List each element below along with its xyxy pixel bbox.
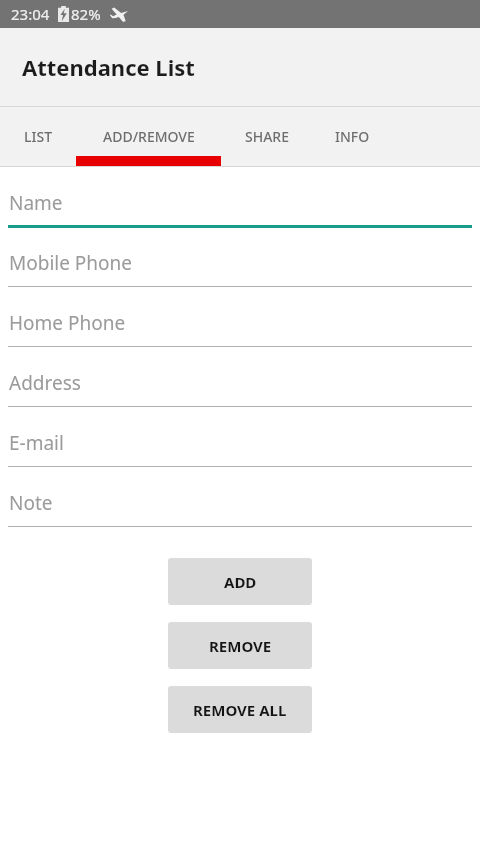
other: Battery charging: [58, 6, 69, 22]
staticText: ADD: [224, 572, 257, 592]
button[interactable]: Note: [0, 480, 480, 540]
staticText: Attendance List: [22, 52, 195, 82]
staticText: REMOVE: [209, 636, 272, 656]
staticText: Mobile Phone: [9, 250, 133, 276]
button[interactable]: ADD: [168, 558, 312, 605]
staticText: 23:04: [11, 4, 50, 24]
staticText: INFO: [335, 127, 370, 146]
staticText: Note: [9, 490, 53, 516]
button[interactable]: REMOVE: [168, 622, 312, 669]
button[interactable]: Address: [0, 360, 480, 420]
button[interactable]: E-mail: [0, 420, 480, 480]
button[interactable]: ADD/REMOVE: [76, 107, 221, 166]
button[interactable]: SHARE: [221, 107, 313, 166]
staticText: LIST: [24, 127, 52, 146]
staticText: Address: [9, 370, 81, 396]
button[interactable]: INFO: [313, 107, 391, 166]
staticText: Home Phone: [9, 310, 126, 336]
staticText: E-mail: [9, 430, 64, 456]
button[interactable]: Mobile Phone: [0, 240, 480, 300]
staticText: ADD/REMOVE: [103, 127, 195, 146]
staticText: REMOVE ALL: [193, 700, 287, 720]
staticText: 82%: [71, 4, 101, 24]
other: Airplane mode: [110, 7, 128, 22]
button[interactable]: Home Phone: [0, 300, 480, 360]
button[interactable]: Name: [0, 180, 480, 240]
button[interactable]: REMOVE ALL: [168, 686, 312, 733]
staticText: SHARE: [245, 127, 289, 146]
button[interactable]: LIST: [0, 107, 76, 166]
staticText: Name: [9, 190, 63, 216]
